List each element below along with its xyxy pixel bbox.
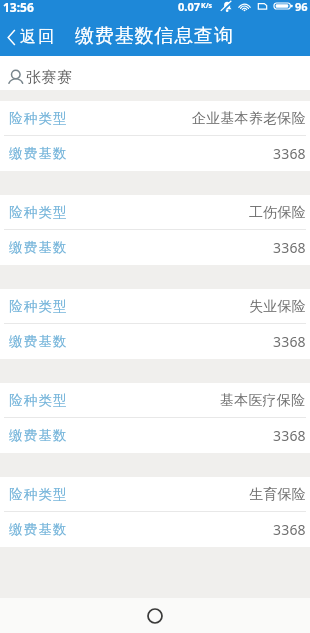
staticText: 13:56 [3, 0, 34, 13]
button[interactable]: 险种类型 [0, 195, 310, 230]
staticText: 3368 [273, 520, 306, 539]
staticText: 缴费基数 [9, 333, 68, 350]
button[interactable]: 缴费基数 [0, 136, 310, 171]
staticText: 险种类型 [9, 110, 68, 127]
staticText: 缴费基数 [9, 427, 68, 444]
button[interactable]: 缴费基数 [0, 230, 310, 265]
staticText: 基本医疗保险 [220, 392, 306, 410]
staticText: 险种类型 [9, 204, 68, 221]
staticText: 3368 [273, 144, 306, 163]
staticText: 工伤保险 [249, 204, 306, 222]
button[interactable]: 缴费基数 [0, 512, 310, 547]
staticText: 缴费基数 [9, 145, 68, 162]
button[interactable]: 张赛赛 [0, 56, 310, 90]
staticText: K/s [201, 1, 213, 11]
staticText: 3368 [273, 332, 306, 351]
staticText: 缴费基数信息查询 [75, 24, 234, 48]
staticText: 张赛赛 [26, 68, 73, 87]
staticText: 返回 [19, 27, 55, 47]
button[interactable]: 险种类型 [0, 101, 310, 136]
staticText: 险种类型 [9, 392, 68, 409]
staticText: 0.07 [178, 0, 200, 13]
button[interactable]: 缴费基数 [0, 324, 310, 359]
button[interactable]: 返回 [0, 22, 63, 52]
button[interactable]: 缴费基数 [0, 418, 310, 453]
staticText: 企业基本养老保险 [192, 110, 306, 128]
button[interactable]: Home [142, 603, 168, 629]
staticText: 失业保险 [249, 298, 306, 316]
button[interactable]: 险种类型 [0, 289, 310, 324]
staticText: 生育保险 [249, 486, 306, 504]
staticText: 96 [295, 0, 308, 13]
staticText: 3368 [273, 426, 306, 445]
staticText: 缴费基数 [9, 239, 68, 256]
staticText: 缴费基数 [9, 521, 68, 538]
staticText: 险种类型 [9, 298, 68, 315]
button[interactable]: 险种类型 [0, 383, 310, 418]
staticText: 3368 [273, 238, 306, 257]
staticText: 险种类型 [9, 486, 68, 503]
button[interactable]: 险种类型 [0, 477, 310, 512]
